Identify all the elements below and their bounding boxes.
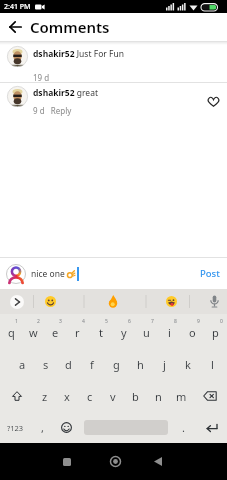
button[interactable]: g	[104, 348, 128, 380]
staticText: c	[87, 389, 93, 404]
button[interactable]: m	[170, 380, 193, 412]
button[interactable]: dshakir52 great	[0, 83, 227, 117]
button[interactable]: t	[89, 316, 112, 348]
button[interactable]	[198, 412, 227, 443]
button[interactable]: nice one	[0, 258, 227, 289]
staticText: .	[182, 420, 185, 435]
button[interactable]	[106, 452, 124, 470]
staticText: 3	[59, 318, 62, 325]
staticText: 8	[174, 318, 177, 325]
staticText: 4	[82, 318, 85, 325]
staticText: Comments	[30, 17, 110, 37]
button[interactable]	[166, 296, 177, 307]
staticText: 9 d Reply	[33, 105, 72, 116]
button[interactable]: dshakir52 Just For Fun	[0, 45, 227, 82]
staticText: j	[163, 357, 166, 372]
staticText: q	[8, 325, 15, 340]
button[interactable]: s	[34, 348, 57, 380]
button[interactable]: y	[112, 316, 135, 348]
button[interactable]: z	[34, 380, 56, 412]
button[interactable]: k	[176, 348, 200, 380]
button[interactable]: j	[152, 348, 176, 380]
button[interactable]	[10, 295, 24, 309]
staticText: n	[155, 389, 162, 404]
staticText: 0	[220, 318, 223, 325]
button[interactable]	[0, 13, 30, 41]
staticText: 5	[105, 318, 108, 325]
staticText: k	[185, 357, 191, 372]
staticText: o	[189, 325, 196, 340]
staticText: r	[75, 325, 80, 340]
button[interactable]	[207, 96, 219, 108]
staticText: s	[43, 357, 49, 372]
staticText: e	[52, 325, 59, 340]
staticText: a	[19, 357, 26, 372]
staticText: ,	[41, 420, 44, 435]
button[interactable]: c	[78, 380, 101, 412]
button[interactable]: w	[22, 316, 44, 348]
staticText: l	[211, 357, 214, 372]
staticText: nice one	[31, 268, 67, 280]
staticText: 19 d	[33, 72, 50, 82]
staticText: z	[42, 389, 48, 404]
button[interactable]: .	[168, 412, 198, 443]
button[interactable]	[193, 380, 227, 412]
button[interactable]	[149, 453, 166, 470]
button[interactable]: f	[80, 348, 104, 380]
staticText: 9	[197, 318, 200, 325]
staticText: 1	[15, 318, 18, 325]
staticText: 7	[151, 318, 154, 325]
button[interactable]	[0, 380, 34, 412]
button[interactable]: ,	[30, 412, 54, 443]
staticText: d	[65, 357, 72, 372]
button[interactable]: a	[11, 348, 34, 380]
button[interactable]: v	[101, 380, 124, 412]
staticText: v	[110, 389, 116, 404]
staticText: ?123	[7, 423, 24, 433]
staticText: y	[121, 325, 127, 340]
button[interactable]: n	[147, 380, 170, 412]
button[interactable]: b	[124, 380, 147, 412]
button[interactable]	[58, 453, 75, 470]
button[interactable]	[108, 295, 118, 308]
button[interactable]: ?123	[0, 412, 30, 443]
button[interactable]: r	[66, 316, 89, 348]
button[interactable]: l	[200, 348, 224, 380]
button[interactable]	[54, 412, 78, 443]
staticText: x	[64, 389, 70, 404]
button[interactable]: p	[204, 316, 227, 348]
staticText: 2	[37, 318, 40, 325]
button[interactable]: d	[57, 348, 80, 380]
staticText: dshakir52 great	[33, 87, 99, 99]
button[interactable]: h	[128, 348, 152, 380]
staticText: w	[29, 325, 38, 340]
staticText: f	[90, 357, 94, 372]
button[interactable]	[210, 295, 219, 309]
button[interactable]	[45, 296, 56, 307]
button[interactable]: i	[158, 316, 181, 348]
button[interactable]: o	[181, 316, 204, 348]
button[interactable]: e	[44, 316, 66, 348]
button[interactable]: u	[135, 316, 158, 348]
button[interactable]: q	[0, 316, 22, 348]
button[interactable]: x	[56, 380, 78, 412]
staticText: g	[113, 357, 120, 372]
button[interactable]: Post	[198, 265, 222, 282]
staticText: m	[176, 389, 187, 404]
staticText: 2:41 PM	[4, 2, 31, 12]
staticText: h	[137, 357, 144, 372]
staticText: dshakir52 Just For Fun	[33, 48, 124, 60]
staticText: u	[143, 325, 150, 340]
staticText: 6	[128, 318, 131, 325]
staticText: b	[132, 389, 139, 404]
staticText: i	[168, 325, 171, 340]
staticText: Post	[200, 267, 220, 280]
staticText: t	[99, 325, 103, 340]
staticText: p	[212, 325, 219, 340]
